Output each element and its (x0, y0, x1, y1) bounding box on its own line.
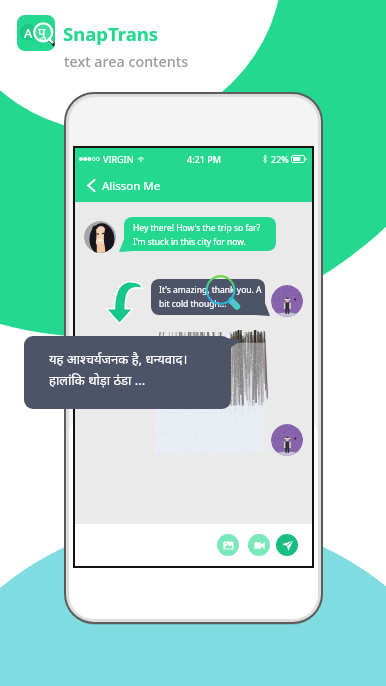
staticText: हालांकि थोड़ा ठंडा ... (49, 371, 146, 389)
button[interactable]: Hey there! How's the trip so far? (124, 217, 276, 251)
staticText: पु (38, 23, 46, 41)
staticText: 22% (271, 153, 289, 165)
staticText: यह आश्चर्यजनक है, धन्यवाद। (49, 350, 188, 368)
button[interactable]: It's amazing, thank you. A (151, 279, 265, 315)
staticText: A (24, 24, 33, 42)
button[interactable]: SnapTrans logo (17, 15, 55, 51)
button[interactable]: Attach image (217, 534, 239, 556)
staticText: It's amazing, thank you. A (159, 284, 262, 296)
staticText: text area contents (64, 52, 189, 71)
staticText: Alisson Me (102, 178, 161, 194)
staticText: Hey there! How's the trip so far? (133, 222, 261, 234)
staticText: bit cold though... (159, 298, 227, 310)
button[interactable]: Video (248, 534, 270, 556)
staticText: I'm stuck in this city for now. (133, 236, 246, 248)
button[interactable]: Send (276, 534, 298, 556)
staticText: SnapTrans (63, 21, 159, 46)
staticText: 4:21 PM (187, 153, 221, 165)
staticText: VIRGIN (103, 153, 134, 165)
button[interactable]: Back (82, 177, 99, 194)
